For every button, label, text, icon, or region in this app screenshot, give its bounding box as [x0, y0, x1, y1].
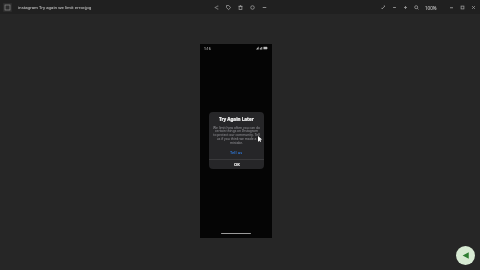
- button[interactable]: Delete: [236, 3, 245, 12]
- button[interactable]: Previous image: [456, 246, 475, 265]
- button[interactable]: 100%: [423, 5, 439, 11]
- staticText: Try Again Later: [219, 116, 254, 122]
- button[interactable]: App icon: [3, 3, 12, 12]
- button[interactable]: Maximize: [458, 3, 467, 12]
- button[interactable]: OK: [209, 160, 264, 169]
- button[interactable]: Actual size: [412, 3, 421, 12]
- staticText: instagram Try again we limit error.jpg: [18, 5, 92, 11]
- staticText: 100%: [425, 5, 437, 11]
- button[interactable]: Close: [469, 3, 478, 12]
- button[interactable]: Minimize: [447, 3, 456, 12]
- button[interactable]: Rotate: [248, 3, 257, 12]
- button[interactable]: Zoom out: [390, 3, 399, 12]
- staticText: Tell us: [230, 150, 243, 155]
- button[interactable]: Fit to window: [379, 3, 388, 12]
- button[interactable]: Tell us: [209, 150, 264, 155]
- button[interactable]: Zoom in: [401, 3, 410, 12]
- button[interactable]: More options: [260, 3, 269, 12]
- button[interactable]: Tag: [224, 3, 233, 12]
- staticText: 1:16: [204, 46, 211, 51]
- button[interactable]: Share: [212, 3, 221, 12]
- staticText: OK: [234, 162, 240, 167]
- staticText: We limit how often you can do certain th…: [213, 125, 260, 145]
